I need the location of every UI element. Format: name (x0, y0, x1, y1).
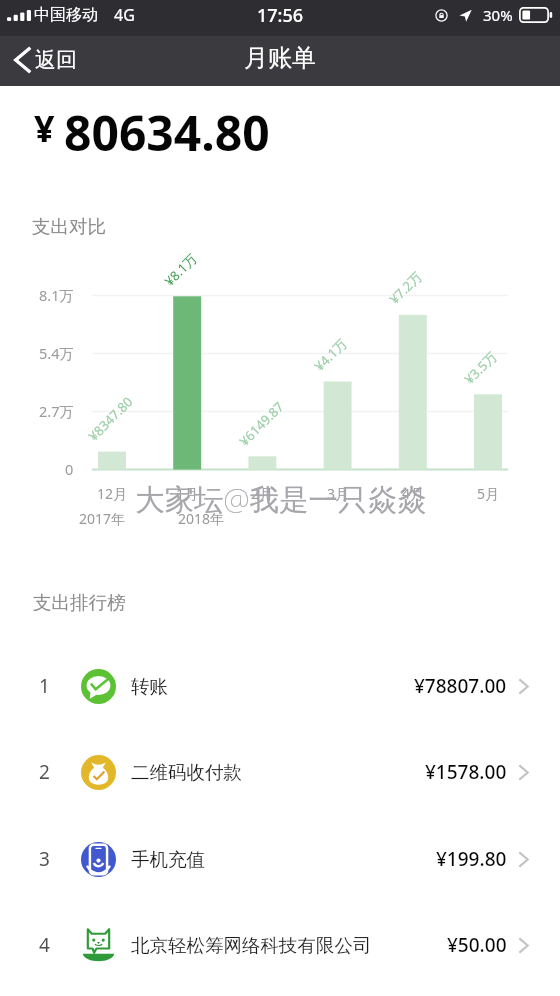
button[interactable]: 3 (0, 816, 560, 902)
staticText: ¥ (34, 104, 55, 153)
staticText: 手机充值 (131, 848, 205, 871)
staticText: ¥8.1万 (160, 249, 201, 290)
staticText: ¥50.00 (447, 932, 507, 958)
staticText: 3 (39, 846, 50, 872)
staticText: 17:56 (257, 3, 304, 28)
staticText: 北京轻松筹网络科技有限公司 (131, 934, 372, 957)
staticText: 3月 (327, 484, 350, 503)
staticText: 2月 (251, 484, 274, 503)
staticText: 0 (65, 459, 74, 479)
staticText: 4月 (402, 484, 425, 503)
staticText: 4G (114, 4, 135, 26)
staticText: 8.1万 (39, 285, 74, 305)
staticText: 月账单 (244, 43, 316, 73)
staticText: 支出对比 (32, 215, 106, 238)
staticText: 5.4万 (39, 343, 74, 363)
staticText: ¥78807.00 (414, 673, 507, 699)
staticText: ¥7.2万 (385, 267, 426, 308)
staticText: 转账 (131, 675, 168, 698)
staticText: 支出排行榜 (33, 591, 126, 614)
staticText: 二维码收付款 (131, 761, 242, 784)
staticText: 80634.80 (64, 100, 270, 165)
staticText: 2 (39, 759, 50, 785)
staticText: 大家坛@我是一只焱焱 (135, 478, 427, 518)
staticText: 1月 (176, 484, 199, 503)
staticText: 2018年 (178, 509, 225, 528)
staticText: ¥6149.87 (235, 397, 288, 450)
staticText: 返回 (35, 47, 77, 73)
staticText: 12月 (97, 484, 128, 503)
staticText: 中国移动 (34, 5, 98, 25)
staticText: ¥199.80 (436, 846, 507, 872)
staticText: 2.7万 (39, 401, 74, 421)
button[interactable]: 4 (0, 902, 560, 988)
button[interactable]: 2 (0, 729, 560, 815)
staticText: ¥8347.80 (84, 392, 137, 445)
button[interactable]: 返回 (0, 39, 93, 83)
staticText: 1 (39, 673, 50, 699)
staticText: 2017年 (79, 509, 126, 528)
button[interactable]: 1 (0, 643, 560, 729)
staticText: 30% (483, 5, 513, 25)
staticText: ¥3.5万 (460, 347, 501, 388)
staticText: 5月 (477, 484, 500, 503)
staticText: ¥4.1万 (310, 334, 351, 375)
staticText: 4 (39, 932, 50, 958)
staticText: ¥1578.00 (425, 759, 507, 785)
